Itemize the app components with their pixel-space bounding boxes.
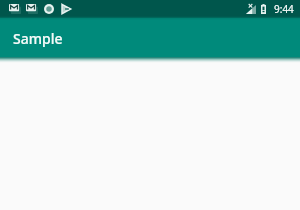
other: Gmail notification [26,4,38,14]
other: Sync in progress [44,4,54,14]
other: Gmail notification [9,4,21,14]
staticText: 9:44 [274,2,294,16]
other: Battery [261,4,266,14]
button[interactable]: Sample [0,18,300,57]
staticText: Sample [13,29,63,48]
other: Mobile signal [246,4,256,14]
other: Google Play [61,4,71,14]
